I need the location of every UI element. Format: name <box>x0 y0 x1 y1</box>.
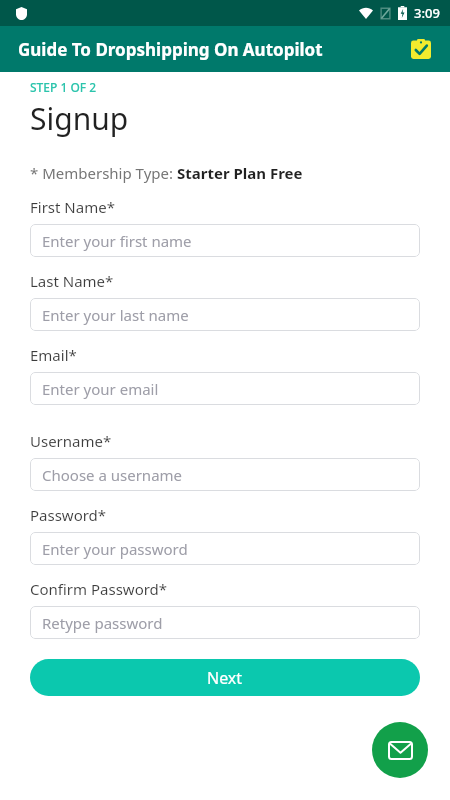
button[interactable]: Retype password <box>30 606 420 639</box>
staticText: 3:09 <box>414 4 440 22</box>
button[interactable]: Checklist <box>404 32 438 66</box>
staticText: Starter Plan Free <box>177 163 303 183</box>
staticText: Enter your first name <box>42 231 192 251</box>
staticText: Enter your password <box>42 539 188 559</box>
staticText: Password* <box>30 505 107 525</box>
button[interactable]: Next <box>30 659 420 696</box>
staticText: Next <box>207 667 243 689</box>
button[interactable]: Enter your email <box>30 372 420 405</box>
staticText: Enter your last name <box>42 305 189 325</box>
staticText: Choose a username <box>42 465 183 485</box>
button[interactable]: Enter your password <box>30 532 420 565</box>
staticText: Email* <box>30 345 77 365</box>
staticText: Last Name* <box>30 271 114 291</box>
button[interactable]: Choose a username <box>30 458 420 491</box>
staticText: Username* <box>30 431 112 451</box>
button[interactable]: Enter your last name <box>30 298 420 331</box>
staticText: First Name* <box>30 197 115 217</box>
staticText: Confirm Password* <box>30 579 168 599</box>
staticText: Signup <box>30 98 129 139</box>
staticText: Enter your email <box>42 379 159 399</box>
staticText: * Membership Type: <box>30 163 177 183</box>
button[interactable]: Contact us by email <box>372 722 428 778</box>
staticText: Retype password <box>42 613 163 633</box>
staticText: STEP 1 OF 2 <box>30 79 97 95</box>
staticText: Guide To Dropshipping On Autopilot <box>18 38 323 61</box>
button[interactable]: Enter your first name <box>30 224 420 257</box>
